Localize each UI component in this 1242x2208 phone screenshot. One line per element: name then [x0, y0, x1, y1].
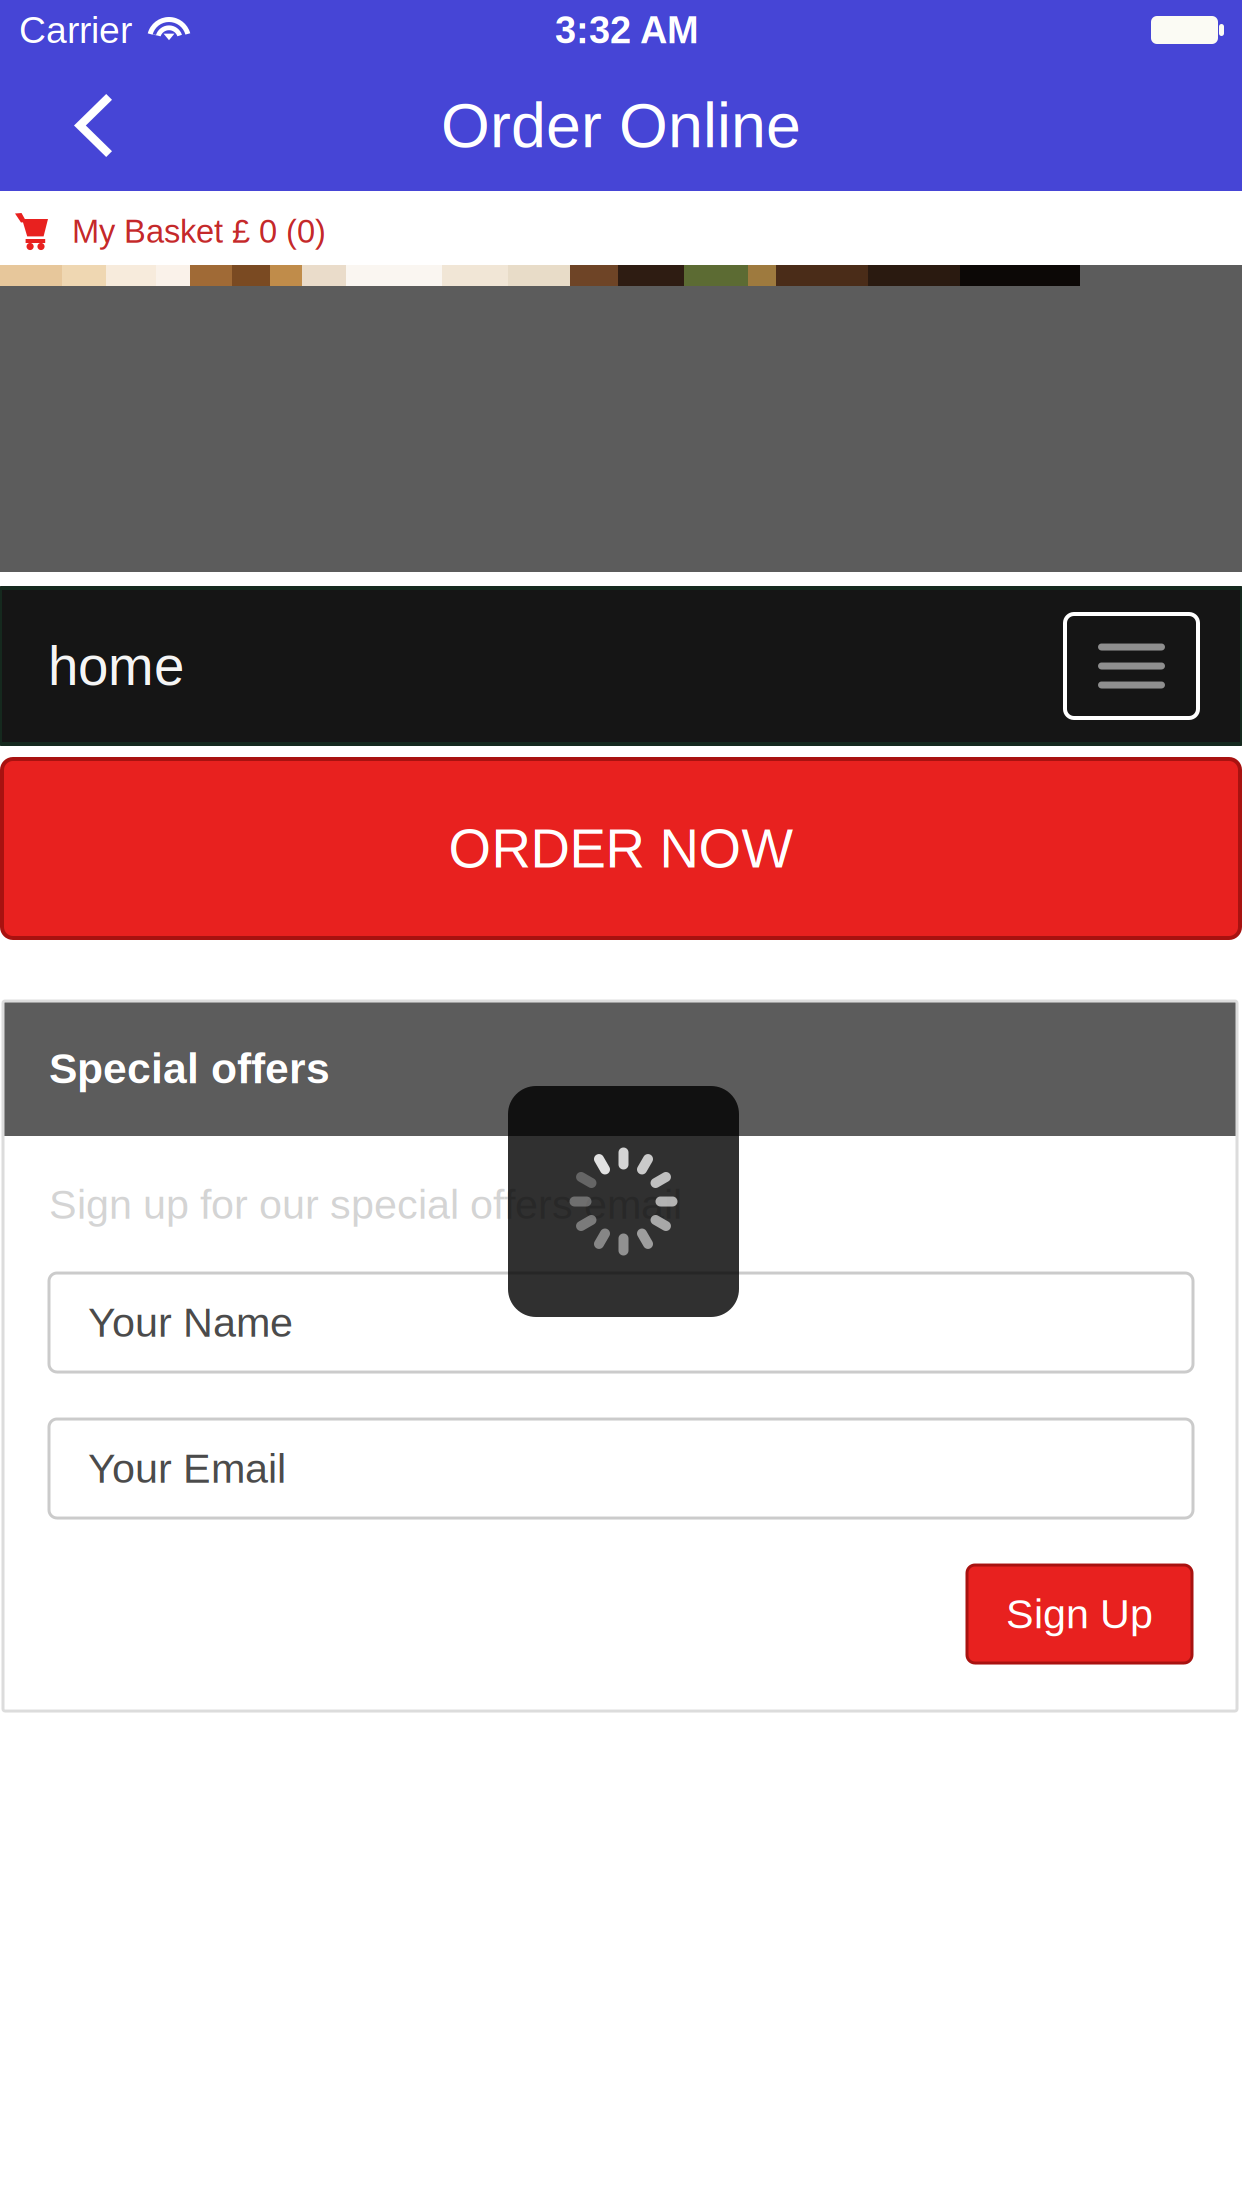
button[interactable]: ORDER NOW [2, 759, 1240, 938]
staticText: Your Name [88, 1299, 293, 1346]
staticText: 3:32 AM [555, 9, 699, 51]
staticText: home [48, 635, 184, 697]
staticText: Your Email [88, 1445, 286, 1492]
button[interactable]: Back [0, 60, 128, 191]
staticText: ORDER NOW [448, 818, 793, 879]
staticText: Special offers [49, 1045, 330, 1092]
button[interactable]: Sign Up [967, 1565, 1192, 1663]
staticText: Carrier [19, 9, 132, 51]
staticText: Order Online [441, 90, 801, 160]
button[interactable]: Menu [1065, 614, 1198, 718]
button[interactable]: My Basket £ 0 (0) [0, 191, 1242, 265]
staticText: Sign up for our special offers email [49, 1181, 682, 1228]
staticText: Sign Up [1006, 1591, 1153, 1637]
staticText: My Basket £ 0 (0) [72, 213, 326, 250]
